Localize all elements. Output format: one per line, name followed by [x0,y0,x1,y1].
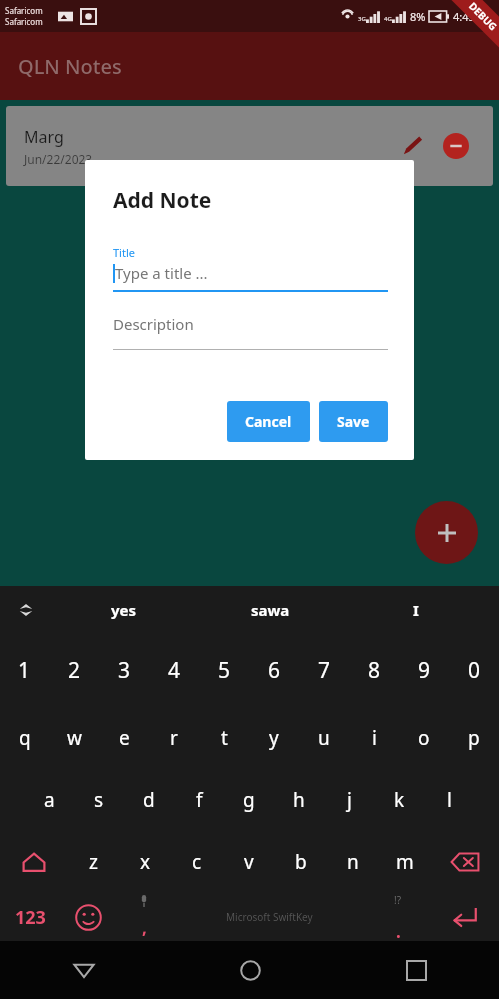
staticText: 4:45 PM [453,9,495,24]
staticText: Jun/22/2023 [24,151,93,167]
button[interactable]: yes [50,600,197,620]
staticText: Cancel [245,412,292,431]
button[interactable]: e [99,707,149,769]
staticText: 3 [118,656,131,685]
button[interactable]: p [449,707,499,769]
staticText: v [244,849,254,875]
button[interactable]: I [343,600,489,620]
button[interactable]: 8 [349,634,399,707]
button[interactable]: Shift [0,831,67,893]
button[interactable]: Back [0,941,167,999]
button[interactable]: sawa [197,600,343,620]
button[interactable]: 9 [399,634,449,707]
staticText: m [396,849,414,875]
staticText: Safaricom [5,16,43,27]
button[interactable]: h [274,769,324,831]
button[interactable]: Edit note [397,131,427,161]
staticText: b [295,849,307,875]
staticText: 4 [168,656,181,685]
button[interactable]: Enter [428,893,499,941]
button[interactable]: 3 [99,634,149,707]
staticText: 123 [15,905,46,930]
staticText: j [347,787,352,813]
button[interactable]: s [74,769,124,831]
staticText: 7 [318,656,331,685]
button[interactable]: 1 [0,634,49,707]
button[interactable]: Space [171,893,368,941]
staticText: QLN Notes [18,53,122,80]
staticText: i [372,725,377,751]
staticText: Title [113,245,135,260]
staticText: 5 [218,656,231,685]
button[interactable]: x [119,831,171,893]
button[interactable]: k [374,769,424,831]
staticText: Description [113,314,194,334]
staticText: 1 [18,656,31,685]
button[interactable]: l [424,769,474,831]
staticText: o [418,725,430,751]
button[interactable]: Recents [333,941,499,999]
staticText: s [94,787,104,813]
staticText: q [19,725,31,751]
button[interactable]: b [275,831,327,893]
staticText: !? [394,893,402,907]
staticText: 8% [410,9,426,24]
button[interactable]: t [199,707,249,769]
button[interactable]: Period [368,893,428,941]
button[interactable]: j [324,769,374,831]
staticText: u [318,725,330,751]
button[interactable]: Marg [6,106,493,186]
button[interactable]: Delete note [441,131,471,161]
button[interactable]: w [49,707,99,769]
staticText: I [413,600,419,620]
button[interactable]: a [25,769,74,831]
button[interactable]: 6 [249,634,299,707]
button[interactable]: u [299,707,349,769]
button[interactable]: n [327,831,379,893]
staticText: w [67,725,82,751]
button[interactable]: i [349,707,399,769]
button[interactable]: r [149,707,199,769]
staticText: g [243,787,255,813]
staticText: , [142,916,147,939]
staticText: a [44,787,55,813]
button[interactable]: Backspace [431,831,499,893]
button[interactable]: Save [319,401,388,442]
button[interactable]: Comma and voice input [116,893,171,941]
button[interactable]: 0 [449,634,499,707]
button[interactable]: Expand suggestions [14,598,38,622]
staticText: r [170,725,178,751]
staticText: f [196,787,203,813]
staticText: c [192,849,202,875]
staticText: Type a title ... [115,263,208,283]
staticText: 9 [418,656,431,685]
button[interactable]: z [67,831,119,893]
button[interactable]: f [174,769,224,831]
button[interactable]: m [379,831,431,893]
staticText: Microsoft SwiftKey [226,910,313,924]
staticText: Save [337,412,370,431]
button[interactable]: v [223,831,275,893]
staticText: n [347,849,359,875]
staticText: Safaricom [5,5,43,16]
staticText: 8 [368,656,381,685]
staticText: sawa [251,600,290,620]
button[interactable]: Home [167,941,333,999]
button[interactable]: d [124,769,174,831]
button[interactable]: 123 [0,893,61,941]
button[interactable]: 7 [299,634,349,707]
button[interactable]: 5 [199,634,249,707]
button[interactable]: q [0,707,49,769]
button[interactable]: Emoji [61,893,116,941]
staticText: t [221,725,228,751]
button[interactable]: Cancel [227,401,310,442]
button[interactable]: c [171,831,223,893]
staticText: y [269,725,279,751]
button[interactable]: 4 [149,634,199,707]
button[interactable]: 2 [49,634,99,707]
button[interactable]: o [399,707,449,769]
button[interactable]: Add note [415,501,478,564]
button[interactable]: y [249,707,299,769]
staticText: Marg [24,126,64,148]
button[interactable]: g [224,769,274,831]
